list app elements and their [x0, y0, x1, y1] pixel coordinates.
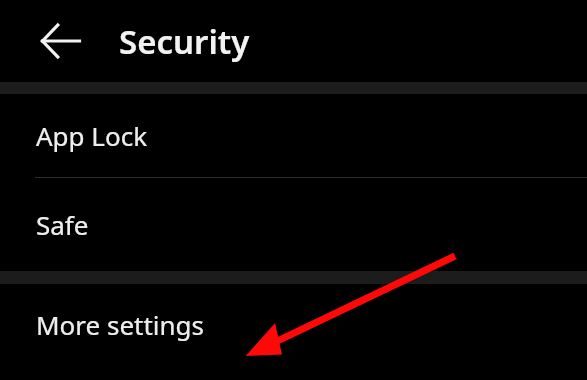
button[interactable]: Back [31, 11, 91, 71]
button[interactable]: Safe [0, 178, 587, 271]
staticText: Safe [36, 207, 89, 242]
button[interactable]: App Lock [0, 94, 587, 177]
staticText: Security [119, 19, 250, 64]
staticText: App Lock [36, 118, 148, 153]
staticText: More settings [36, 307, 205, 342]
button[interactable]: More settings [0, 284, 587, 364]
